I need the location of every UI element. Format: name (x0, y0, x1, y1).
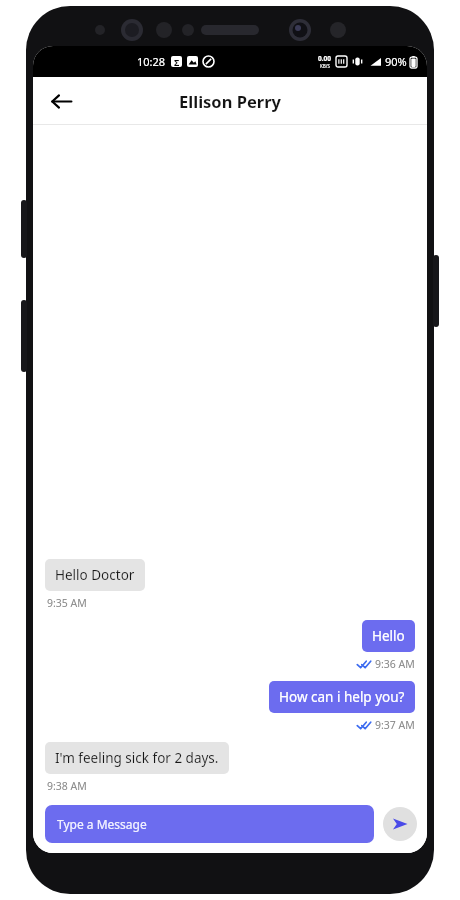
staticText: 10:28 (137, 54, 166, 69)
staticText: Ellison Perry (179, 90, 281, 112)
staticText: 9:35 AM (47, 596, 87, 610)
staticText: Hello (372, 627, 405, 645)
button[interactable]: Type a Message (45, 805, 374, 843)
button[interactable]: Back (41, 81, 81, 121)
button[interactable]: Hello (362, 620, 415, 652)
button[interactable]: How can i help you? (269, 681, 415, 713)
staticText: 90% (385, 54, 407, 69)
staticText: 9:36 AM (375, 657, 415, 671)
staticText: KB/S (320, 63, 330, 69)
staticText: Σ (174, 56, 180, 67)
button[interactable]: Hello Doctor (45, 559, 145, 591)
staticText: Type a Message (57, 816, 147, 832)
button[interactable]: I'm feeling sick for 2 days. (45, 742, 229, 774)
staticText: 9:37 AM (375, 718, 415, 732)
staticText: Hello Doctor (55, 566, 135, 584)
button[interactable]: Send (383, 807, 417, 841)
staticText: How can i help you? (279, 688, 405, 706)
staticText: I'm feeling sick for 2 days. (55, 749, 219, 767)
staticText: 9:38 AM (47, 779, 87, 793)
staticText: 0.00 (318, 54, 331, 63)
